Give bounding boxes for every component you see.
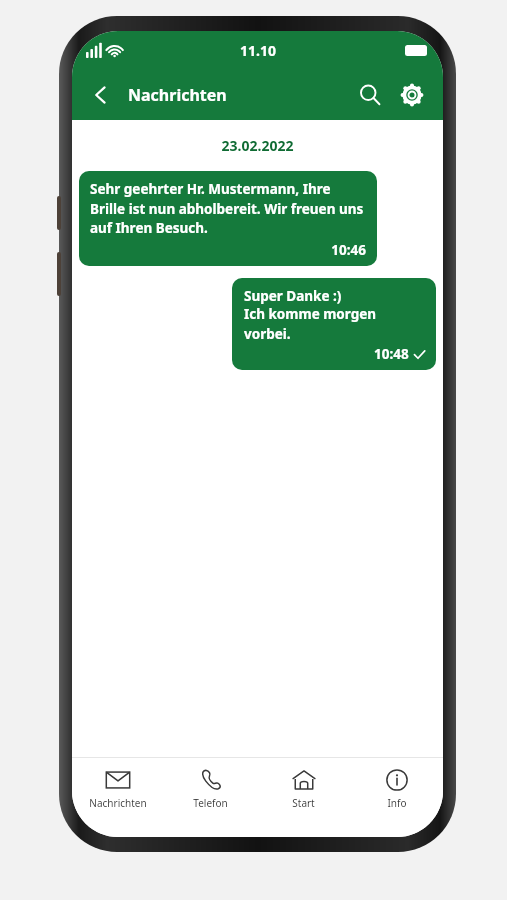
- staticText: Info: [387, 796, 407, 810]
- staticText: 10:48: [374, 345, 409, 363]
- button[interactable]: Settings: [391, 74, 433, 116]
- staticText: 23.02.2022: [79, 136, 436, 155]
- staticText: Nachrichten: [128, 84, 227, 106]
- button[interactable]: Start: [257, 758, 350, 837]
- staticText: Telefon: [193, 796, 228, 810]
- button[interactable]: Info: [350, 758, 443, 837]
- button[interactable]: Search: [349, 74, 391, 116]
- button[interactable]: Telefon: [164, 758, 257, 837]
- staticText: 11.10: [240, 41, 276, 60]
- staticText: Start: [292, 796, 315, 810]
- staticText: Sehr geehrter Hr. Mustermann, Ihre Brill…: [90, 180, 366, 237]
- staticText: 10:46: [90, 241, 366, 259]
- button[interactable]: Nachrichten: [72, 758, 164, 837]
- button[interactable]: Back: [80, 74, 122, 116]
- button[interactable]: Sehr geehrter Hr. Mustermann, Ihre Brill…: [79, 171, 377, 266]
- staticText: Ich komme morgen vorbei.: [244, 305, 425, 343]
- staticText: Nachrichten: [89, 796, 147, 810]
- staticText: Super Danke :): [244, 287, 342, 305]
- button[interactable]: Super Danke :): [232, 278, 436, 370]
